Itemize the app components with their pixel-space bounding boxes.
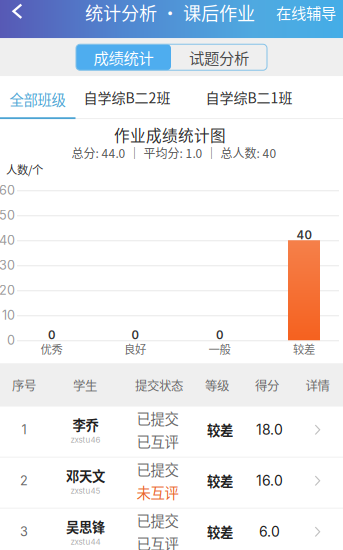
staticText: 0 — [7, 333, 15, 348]
staticText: 总分: 44.0 ｜ 平均分: 1.0 ｜ 总人数: 40 — [71, 144, 276, 161]
staticText: 0 — [216, 328, 223, 342]
staticText: 自学综B二1班 — [205, 87, 292, 107]
button[interactable]: 成绩统计 — [76, 44, 171, 70]
staticText: 全部班级 — [9, 89, 65, 110]
staticText: zxstu46 — [70, 435, 100, 445]
staticText: zxstu45 — [70, 486, 100, 496]
staticText: 已互评 — [136, 533, 178, 550]
staticText: 详情 — [305, 376, 329, 394]
staticText: 自学综B二2班 — [83, 87, 170, 107]
staticText: 已提交 — [136, 459, 178, 480]
staticText: 一般 — [208, 340, 230, 357]
staticText: 李乔 — [72, 415, 98, 434]
button[interactable]: 返回 — [0, 0, 36, 33]
staticText: 良好 — [124, 340, 146, 357]
staticText: 吴思锋 — [66, 517, 105, 536]
button[interactable]: 自学综B二2班 — [67, 77, 187, 117]
staticText: 等级 — [205, 376, 229, 394]
staticText: 提交状态 — [135, 376, 183, 394]
button[interactable]: 在线辅导 — [271, 0, 341, 27]
staticText: 18.0 — [256, 421, 283, 438]
button[interactable]: 试题分析 — [171, 44, 267, 70]
staticText: 1 — [21, 422, 26, 437]
staticText: 2 — [20, 473, 28, 488]
staticText: 6.0 — [259, 523, 280, 540]
staticText: 60 — [0, 183, 15, 198]
staticText: 10 — [2, 308, 15, 323]
staticText: 40 — [296, 228, 311, 242]
staticText: 人数/个 — [6, 161, 43, 177]
button[interactable]: 1 — [0, 407, 343, 457]
staticText: 作业成绩统计图 — [114, 123, 226, 146]
button[interactable]: 2 — [0, 458, 343, 508]
staticText: 已互评 — [136, 431, 178, 452]
staticText: 邓天文 — [66, 466, 105, 485]
staticText: zxstu44 — [70, 537, 100, 547]
staticText: 0 — [48, 328, 55, 342]
staticText: 30 — [0, 258, 15, 273]
staticText: 已提交 — [136, 510, 178, 531]
staticText: 试题分析 — [189, 46, 249, 68]
staticText: 40 — [0, 233, 15, 248]
staticText: 16.0 — [256, 472, 283, 489]
staticText: 学生 — [73, 376, 97, 394]
staticText: 优秀 — [40, 340, 62, 357]
staticText: 在线辅导 — [276, 1, 336, 23]
button[interactable]: 全部班级 — [0, 76, 75, 119]
staticText: 50 — [0, 208, 15, 223]
button[interactable]: 自学综B二1班 — [189, 77, 309, 117]
staticText: 成绩统计 — [93, 46, 153, 68]
button[interactable]: 3 — [0, 509, 343, 550]
staticText: 得分 — [255, 376, 279, 394]
staticText: 较差 — [293, 340, 315, 357]
staticText: 较差 — [207, 471, 233, 490]
staticText: 已提交 — [136, 408, 178, 429]
staticText: 统计分析 · 课后作业 — [85, 0, 255, 25]
staticText: 20 — [0, 283, 15, 298]
staticText: 0 — [131, 328, 138, 342]
staticText: 较差 — [207, 522, 233, 541]
staticText: 较差 — [207, 420, 233, 439]
staticText: 未互评 — [136, 482, 178, 503]
staticText: 3 — [20, 524, 28, 539]
staticText: 序号 — [12, 376, 36, 394]
